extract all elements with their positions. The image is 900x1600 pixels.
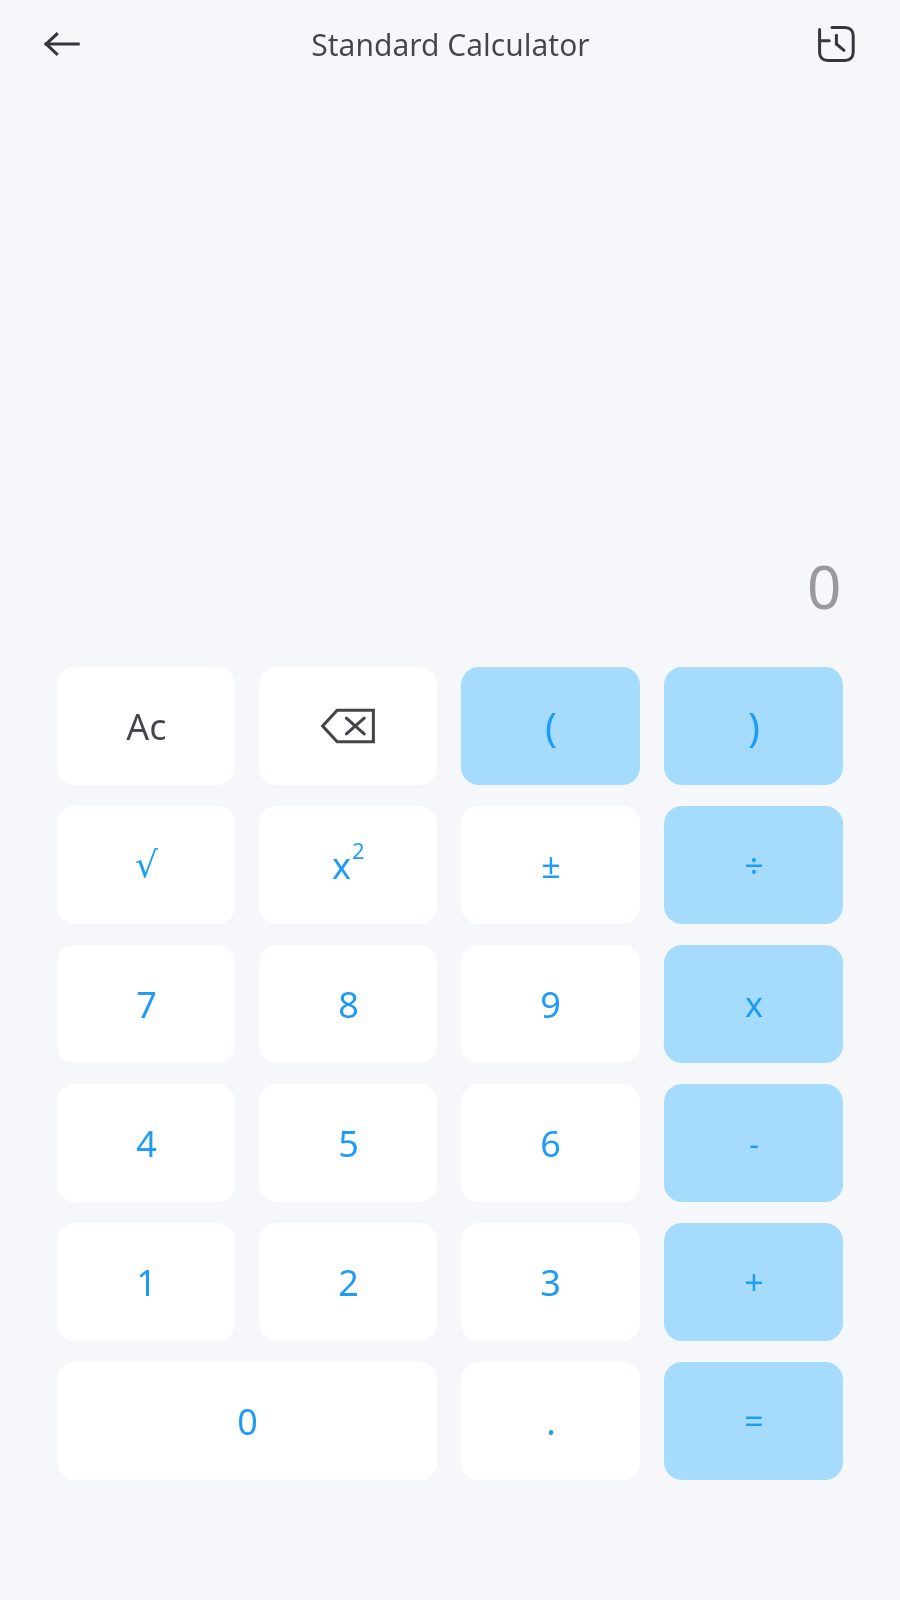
staticText: ) [748, 699, 760, 753]
button[interactable]: + [664, 1223, 843, 1341]
staticText: x [745, 981, 763, 1027]
staticText: 3 [540, 1258, 561, 1307]
staticText: 0 [237, 1397, 258, 1446]
staticText: = [744, 1398, 764, 1444]
button[interactable]: ÷ [664, 806, 843, 924]
staticText: 1 [136, 1258, 157, 1307]
button[interactable]: ) [664, 667, 843, 785]
button[interactable]: 7 [57, 945, 235, 1063]
staticText: Ac [126, 702, 167, 751]
staticText: Standard Calculator [311, 24, 590, 65]
button[interactable]: x [259, 806, 437, 924]
staticText: 9 [540, 980, 561, 1029]
button[interactable]: 8 [259, 945, 437, 1063]
staticText: ( [545, 699, 557, 753]
button[interactable]: 4 [57, 1084, 235, 1202]
staticText: 5 [338, 1119, 359, 1168]
button[interactable]: 2 [259, 1223, 437, 1341]
staticText: x [332, 841, 352, 890]
button[interactable]: Back [26, 8, 98, 80]
staticText: 6 [540, 1119, 561, 1168]
button[interactable]: ( [461, 667, 640, 785]
staticText: + [744, 1259, 764, 1305]
staticText: 0 [807, 545, 842, 627]
button[interactable]: - [664, 1084, 843, 1202]
button[interactable]: . [461, 1362, 640, 1480]
staticText: √ [135, 844, 158, 886]
staticText: ± [541, 842, 561, 888]
staticText: 7 [136, 980, 157, 1029]
button[interactable]: ± [461, 806, 640, 924]
button[interactable]: √ [57, 806, 235, 924]
button[interactable]: Ac [57, 667, 235, 785]
staticText: ÷ [744, 842, 764, 888]
button[interactable]: 5 [259, 1084, 437, 1202]
staticText: . [546, 1397, 556, 1446]
staticText: 8 [338, 980, 359, 1029]
staticText: 2 [352, 835, 365, 865]
button[interactable]: Backspace [259, 667, 437, 785]
button[interactable]: = [664, 1362, 843, 1480]
staticText: - [749, 1123, 759, 1164]
button[interactable]: 0 [57, 1362, 437, 1480]
button[interactable]: 6 [461, 1084, 640, 1202]
staticText: 4 [136, 1119, 157, 1168]
button[interactable]: 3 [461, 1223, 640, 1341]
button[interactable]: x [664, 945, 843, 1063]
staticText: 2 [338, 1258, 359, 1307]
button[interactable]: History [800, 8, 872, 80]
button[interactable]: 1 [57, 1223, 235, 1341]
button[interactable]: 9 [461, 945, 640, 1063]
